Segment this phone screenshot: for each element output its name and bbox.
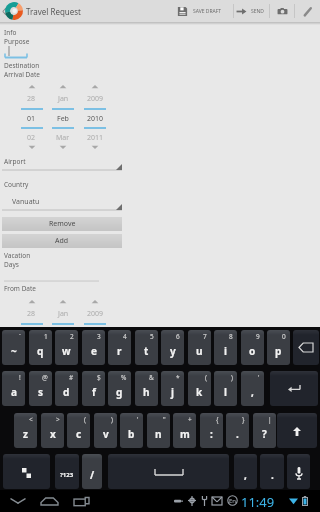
staticText: . (236, 427, 239, 441)
button[interactable]: , (234, 454, 257, 489)
staticText: From Date (4, 284, 37, 293)
staticText: 4 (123, 332, 127, 341)
staticText: ( (84, 415, 86, 424)
button[interactable]: Home (35, 490, 63, 512)
button[interactable]: r (108, 330, 131, 365)
button[interactable]: m (173, 413, 196, 448)
button[interactable]: Jan (47, 84, 79, 150)
staticText: ! (19, 373, 21, 382)
button[interactable]: symbols (55, 454, 79, 489)
staticText: @ (42, 373, 48, 382)
button[interactable] (2, 155, 122, 171)
button[interactable]: d (55, 371, 78, 406)
button[interactable]: 28 (16, 84, 47, 150)
staticText: m (180, 427, 190, 441)
staticText: r (117, 344, 122, 358)
button[interactable]: t (135, 330, 158, 365)
button[interactable]: . (226, 413, 249, 448)
staticText: SEND (251, 8, 264, 15)
button[interactable]: h (135, 371, 158, 406)
button[interactable]: Vanuatu (2, 195, 122, 211)
button[interactable]: n (147, 413, 170, 448)
button[interactable]: 2009 (79, 299, 111, 365)
staticText: , (244, 468, 247, 482)
button[interactable]: ? (253, 413, 276, 448)
button[interactable]: 28 (16, 299, 47, 365)
button[interactable]: Back (4, 490, 32, 512)
staticText: Jan (58, 309, 69, 319)
staticText: ? (262, 427, 267, 441)
button[interactable]: , (241, 371, 264, 406)
staticText: e (91, 344, 97, 358)
button[interactable]: g (108, 371, 131, 406)
button[interactable]: a (2, 371, 25, 406)
button[interactable]: u (188, 330, 211, 365)
staticText: # (69, 373, 74, 382)
staticText: Feb (57, 329, 69, 339)
staticText: " (163, 415, 166, 424)
button[interactable]: . (260, 454, 284, 489)
button[interactable]: SAVE DRAFT (174, 0, 230, 22)
button[interactable]: mic (287, 454, 310, 489)
staticText: x (50, 427, 56, 441)
button[interactable]: ~ (2, 330, 25, 365)
button[interactable]: / (82, 454, 102, 489)
staticText: f (92, 385, 96, 399)
staticText: o (249, 344, 256, 358)
staticText: 2 (70, 332, 74, 341)
staticText: i (224, 344, 227, 358)
button[interactable]: Recents (67, 490, 95, 512)
staticText: k (196, 385, 203, 399)
button[interactable]: Camera (271, 0, 293, 22)
button[interactable] (4, 270, 99, 282)
staticText: p (275, 344, 282, 358)
button[interactable] (4, 44, 29, 60)
button[interactable]: SEND (235, 0, 267, 22)
staticText: 2010 (87, 114, 104, 124)
button[interactable]: : (200, 413, 223, 448)
button[interactable]: Attach (296, 0, 318, 22)
staticText: , (251, 385, 254, 399)
staticText: a (11, 385, 17, 399)
button[interactable]: x (41, 413, 64, 448)
staticText: Mar (56, 348, 70, 358)
button[interactable]: lang (3, 454, 50, 489)
staticText: 01 (27, 114, 36, 124)
button[interactable]: shift (277, 413, 317, 448)
button[interactable]: p (267, 330, 290, 365)
staticText: ) (111, 415, 113, 424)
staticText: 5 (150, 332, 154, 341)
button[interactable]: bksp (293, 330, 319, 365)
staticText: % (121, 373, 127, 382)
button[interactable]: Travel Request (5, 0, 81, 22)
staticText: / (90, 468, 95, 482)
button[interactable]: q (29, 330, 52, 365)
staticText: ?123 (60, 471, 74, 479)
button[interactable]: w (55, 330, 78, 365)
staticText: 02 (27, 133, 36, 143)
staticText: Jan (58, 94, 69, 104)
button[interactable]: e (82, 330, 105, 365)
button[interactable]: s (29, 371, 52, 406)
button[interactable]: l (214, 371, 237, 406)
staticText: Info (4, 28, 17, 37)
button[interactable]: space (108, 454, 229, 489)
button[interactable]: k (188, 371, 211, 406)
button[interactable]: b (120, 413, 143, 448)
button[interactable]: enter (270, 371, 318, 406)
button[interactable]: f (82, 371, 105, 406)
button[interactable]: Remove (2, 217, 122, 231)
staticText: 01 (27, 329, 36, 339)
button[interactable]: o (241, 330, 264, 365)
button[interactable]: z (14, 413, 37, 448)
button[interactable]: i (214, 330, 237, 365)
staticText: t (144, 344, 149, 358)
button[interactable]: Add (2, 234, 122, 248)
button[interactable]: 2009 (79, 84, 111, 150)
staticText: 02 (27, 348, 36, 358)
button[interactable]: y (161, 330, 184, 365)
button[interactable]: Jan (47, 299, 79, 365)
button[interactable]: c (67, 413, 90, 448)
button[interactable]: j (161, 371, 184, 406)
button[interactable]: v (94, 413, 117, 448)
